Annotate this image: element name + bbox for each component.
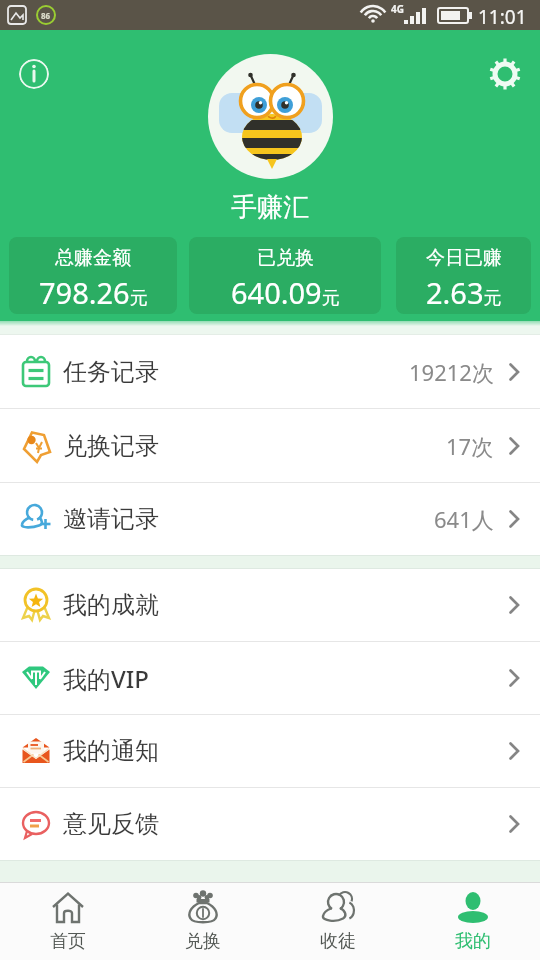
staticText: 798.26元 <box>39 273 148 312</box>
staticText: 手赚汇 <box>231 191 309 224</box>
button[interactable]: 兑换记录 <box>0 409 540 482</box>
staticText: 收徒 <box>320 930 356 953</box>
staticText: 任务记录 <box>63 357 159 387</box>
staticText: 17次 <box>446 431 494 461</box>
button[interactable]: 已兑换 <box>189 237 381 314</box>
staticText: 11:01 <box>478 4 527 30</box>
staticText: 兑换记录 <box>63 431 159 461</box>
button[interactable]: 我的 <box>405 883 540 960</box>
staticText: 总赚金额 <box>55 246 131 270</box>
staticText: 我的VIP <box>63 662 149 695</box>
button[interactable] <box>19 59 49 89</box>
staticText: 641人 <box>434 504 494 534</box>
button[interactable]: 任务记录 <box>0 335 540 408</box>
button[interactable]: 总赚金额 <box>9 237 177 314</box>
staticText: 已兑换 <box>257 246 314 270</box>
staticText: 我的成就 <box>63 590 159 620</box>
button[interactable] <box>208 54 333 179</box>
staticText: 兑换 <box>185 930 221 953</box>
staticText: 邀请记录 <box>63 504 159 534</box>
button[interactable]: 邀请记录 <box>0 483 540 555</box>
staticText: 640.09元 <box>231 273 340 312</box>
button[interactable]: 兑换 <box>135 883 270 960</box>
button[interactable]: 今日已赚 <box>396 237 531 314</box>
staticText: 意见反馈 <box>63 809 159 839</box>
button[interactable]: 意见反馈 <box>0 788 540 860</box>
button[interactable]: 我的通知 <box>0 715 540 787</box>
button[interactable]: 收徒 <box>270 883 405 960</box>
staticText: 2.63元 <box>426 273 502 312</box>
staticText: 今日已赚 <box>426 246 502 270</box>
staticText: 我的 <box>455 930 491 953</box>
button[interactable]: 首页 <box>0 883 135 960</box>
staticText: 19212次 <box>409 357 494 387</box>
staticText: 我的通知 <box>63 736 159 766</box>
button[interactable]: 我的VIP <box>0 642 540 714</box>
staticText: 86 <box>41 10 51 21</box>
staticText: 首页 <box>50 930 86 953</box>
button[interactable] <box>489 58 521 90</box>
staticText: 4G <box>391 2 404 16</box>
button[interactable]: 我的成就 <box>0 569 540 641</box>
